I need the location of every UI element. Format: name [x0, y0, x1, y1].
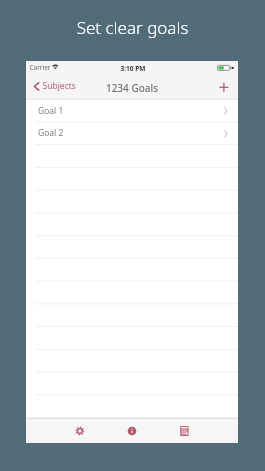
staticText: 3:10 PM — [120, 64, 145, 73]
staticText: Carrier — [29, 63, 51, 72]
button[interactable]: Calculator — [166, 418, 202, 442]
staticText: Subjects — [42, 80, 76, 92]
button[interactable]: Goal 2 — [26, 122, 238, 145]
button[interactable]: Goal 1 — [26, 100, 238, 123]
button[interactable]: Settings — [61, 418, 97, 442]
staticText: Set clear goals — [0, 16, 265, 39]
button[interactable]: Info — [113, 418, 149, 442]
staticText: Goal 1 — [38, 105, 64, 117]
button[interactable]: Add goal — [213, 77, 233, 97]
staticText: Goal 2 — [38, 127, 64, 139]
button[interactable]: Subjects — [29, 75, 81, 97]
staticText: 1234 Goals — [26, 81, 238, 95]
